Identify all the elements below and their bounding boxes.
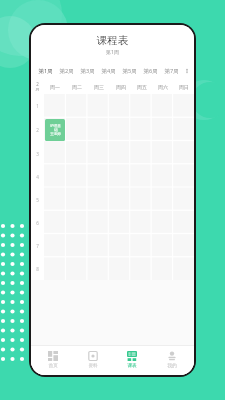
button[interactable]: 周三 (88, 80, 110, 94)
staticText: 2 (36, 127, 39, 133)
staticText: 王老师 (50, 132, 61, 136)
staticText: 第3周 (80, 67, 95, 75)
button[interactable]: 课表 (114, 345, 150, 375)
button[interactable]: 周五 (131, 80, 152, 94)
button[interactable]: 第6周 (140, 64, 161, 77)
staticText: 课程表 (31, 34, 194, 47)
staticText: 护理基 (50, 124, 61, 128)
button[interactable]: 第5周 (119, 64, 140, 77)
button[interactable]: 周二 (66, 80, 88, 94)
button[interactable]: 周日 (173, 80, 194, 94)
button[interactable]: 第2周 (56, 64, 77, 77)
staticText: 月 (35, 87, 40, 93)
button[interactable]: More options (182, 64, 192, 77)
staticText: 3 (36, 151, 39, 157)
staticText: 周三 (94, 84, 104, 90)
staticText: 首页 (48, 363, 58, 369)
staticText: 2 (36, 81, 39, 87)
staticText: 周五 (137, 84, 147, 90)
staticText: 周日 (179, 84, 189, 90)
staticText: 第6周 (143, 67, 158, 75)
staticText: 4 (36, 174, 39, 180)
staticText: 资料 (88, 363, 98, 369)
button[interactable]: 我的 (154, 345, 190, 375)
staticText: 8 (36, 266, 39, 272)
staticText: 课表 (127, 363, 137, 369)
staticText: 周六 (158, 84, 168, 90)
staticText: 周一 (50, 84, 60, 90)
staticText: 第5周 (122, 67, 137, 75)
button[interactable]: 护理基 (45, 119, 65, 141)
staticText: 础 (54, 128, 58, 132)
staticText: 第1周 (31, 49, 194, 56)
button[interactable]: 第7周 (161, 64, 182, 77)
staticText: 7 (36, 243, 39, 249)
button[interactable]: 周四 (110, 80, 131, 94)
staticText: 6 (36, 220, 39, 226)
button[interactable]: 第1周 (34, 64, 56, 77)
staticText: 第4周 (101, 67, 116, 75)
staticText: 周二 (72, 84, 82, 90)
staticText: 1 (36, 103, 39, 109)
button[interactable]: 资料 (75, 345, 111, 375)
button[interactable]: 周一 (44, 80, 66, 94)
staticText: 5 (36, 197, 39, 203)
staticText: 第7周 (164, 67, 179, 75)
button[interactable]: 第3周 (77, 64, 98, 77)
staticText: 我的 (167, 363, 177, 369)
button[interactable]: 首页 (35, 345, 71, 375)
button[interactable]: 第4周 (98, 64, 119, 77)
staticText: 第2周 (59, 67, 74, 75)
staticText: 第1周 (38, 67, 53, 75)
staticText: 周四 (116, 84, 126, 90)
button[interactable]: 周六 (152, 80, 173, 94)
